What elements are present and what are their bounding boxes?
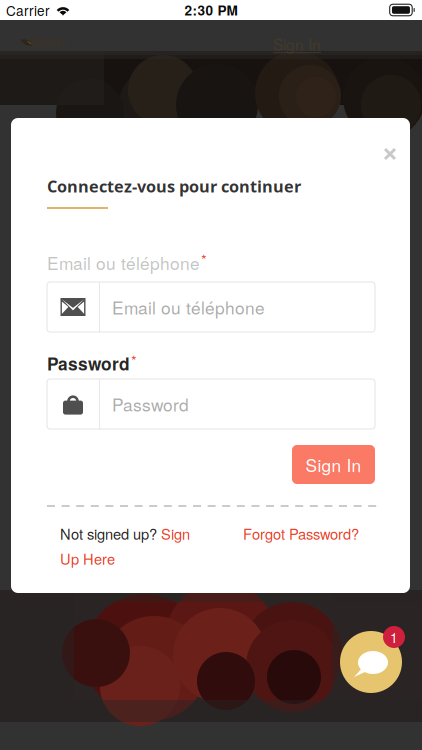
button[interactable]: Sign In [292,445,375,484]
staticText: * [201,249,207,270]
staticText: Sign [161,523,190,544]
button[interactable]: Chat support, 1 unread message [340,626,406,694]
staticText: * [131,350,137,371]
staticText: Connectez-vous pour continuer [47,175,301,197]
staticText: Forgot Password? [243,523,359,544]
staticText: Email ou téléphone [47,250,200,275]
staticText: liberty [31,32,67,50]
staticText: Email ou téléphone [112,295,265,319]
button[interactable]: Not signed up? [60,523,196,569]
button[interactable]: Forgot Password? [243,523,361,544]
staticText: Not signed up? [60,523,161,544]
staticText: Sign In [305,452,361,477]
button[interactable]: Close [372,136,408,172]
staticText: Password [112,392,189,416]
staticText: Password [47,351,130,376]
button[interactable]: Sign In [262,28,332,60]
staticText: Carrier [6,0,50,20]
staticText: Sign In [273,33,321,55]
staticText: 1 [390,627,398,647]
button[interactable]: liberty, home [12,26,80,56]
staticText: 2:30 PM [184,0,237,20]
staticText: Up Here [60,548,115,569]
